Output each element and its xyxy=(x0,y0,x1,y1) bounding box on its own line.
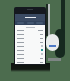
button[interactable] xyxy=(15,60,45,64)
button[interactable]: Watch face xyxy=(46,34,59,51)
button[interactable] xyxy=(15,56,45,60)
button[interactable] xyxy=(15,32,45,36)
button[interactable] xyxy=(15,44,45,48)
button[interactable] xyxy=(15,52,45,56)
button[interactable] xyxy=(15,14,45,21)
button[interactable] xyxy=(15,40,45,44)
button[interactable] xyxy=(15,36,45,40)
button[interactable] xyxy=(15,29,45,32)
button[interactable] xyxy=(15,48,45,52)
